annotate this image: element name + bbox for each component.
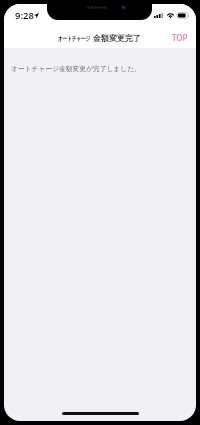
staticText: TOP — [172, 32, 188, 43]
staticText: 金額変更完了 — [93, 33, 141, 43]
staticText: オートチャージ — [58, 34, 90, 43]
button[interactable]: TOP — [164, 28, 196, 47]
staticText: 9:28 — [15, 9, 34, 22]
staticText: オートチャージ金額変更が完了しました。 — [11, 65, 141, 74]
